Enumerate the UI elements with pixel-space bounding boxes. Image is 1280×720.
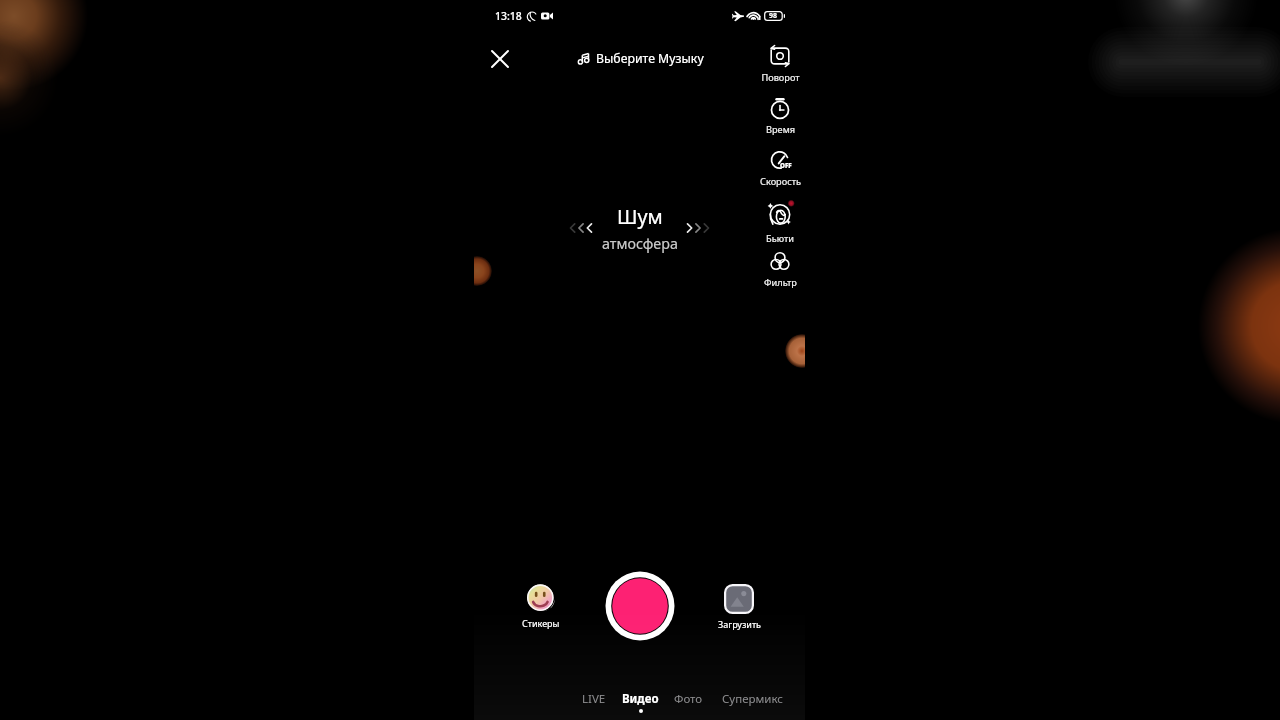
staticText: Время	[766, 123, 795, 136]
button[interactable]: LIVE	[576, 688, 612, 716]
button[interactable]: Фильтр	[752, 247, 805, 291]
staticText: 13:18	[495, 9, 522, 23]
staticText: Скорость	[760, 175, 801, 188]
button[interactable]: Фото	[668, 688, 709, 716]
button[interactable]: Видео	[616, 688, 665, 716]
staticText: Супермикс	[722, 691, 784, 707]
staticText: Бьюти	[766, 232, 794, 245]
staticText: Фото	[674, 691, 703, 707]
button[interactable]: Выберите Музыку	[574, 47, 708, 70]
button[interactable]: Супермикс	[716, 688, 790, 716]
staticText: Видео	[622, 691, 659, 707]
button[interactable]: Поворот	[752, 42, 805, 86]
button[interactable]: Загрузить	[705, 581, 773, 633]
staticText: Стикеры	[522, 617, 560, 629]
button[interactable]: Бьюти	[752, 197, 805, 247]
button[interactable]: Стикеры	[507, 581, 575, 632]
button[interactable]: Шум	[594, 203, 686, 253]
staticText: Загрузить	[718, 618, 761, 630]
button[interactable]: Время	[752, 94, 805, 138]
button[interactable]: Close	[484, 43, 516, 75]
staticText: OFF	[780, 161, 792, 169]
staticText: 98	[769, 11, 778, 21]
button[interactable]: Record	[602, 568, 678, 644]
staticText: LIVE	[582, 691, 606, 707]
staticText: Шум	[617, 203, 663, 230]
staticText: Выберите Музыку	[596, 50, 704, 67]
staticText: атмосфера	[602, 234, 678, 253]
staticText: Фильтр	[764, 276, 797, 289]
button[interactable]: OFF	[752, 146, 805, 190]
staticText: Поворот	[761, 71, 800, 84]
